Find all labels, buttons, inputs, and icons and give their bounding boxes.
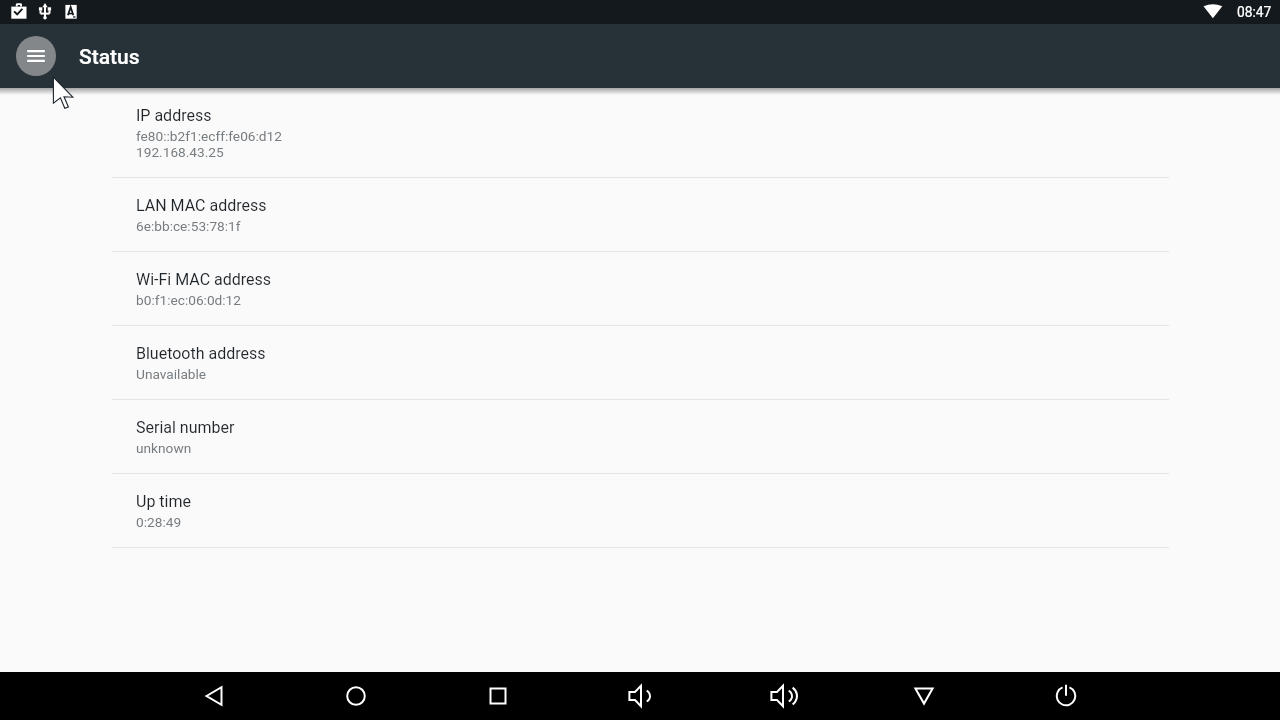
button[interactable]: Volume down: [569, 672, 711, 720]
button[interactable]: Hide keyboard: [853, 672, 995, 720]
button[interactable]: Serial number: [0, 400, 1280, 474]
button[interactable]: Power: [995, 672, 1137, 720]
button[interactable]: Home: [285, 672, 427, 720]
button[interactable]: Wi-Fi MAC address: [0, 252, 1280, 326]
staticText: Up time: [136, 492, 191, 511]
staticText: 192.168.43.25: [136, 144, 224, 160]
staticText: Unavailable: [136, 366, 207, 382]
staticText: IP address: [136, 106, 212, 125]
staticText: 08:47: [1237, 4, 1272, 20]
button[interactable]: Recents: [427, 672, 569, 720]
button[interactable]: LAN MAC address: [0, 178, 1280, 252]
staticText: Bluetooth address: [136, 344, 266, 363]
button[interactable]: Bluetooth address: [0, 326, 1280, 400]
button[interactable]: IP address: [0, 88, 1280, 178]
staticText: 6e:bb:ce:53:78:1f: [136, 218, 241, 234]
button[interactable]: Up time: [0, 474, 1280, 548]
staticText: Wi-Fi MAC address: [136, 270, 272, 289]
staticText: Serial number: [136, 418, 235, 437]
staticText: LAN MAC address: [136, 196, 267, 215]
staticText: 0:28:49: [136, 514, 182, 530]
staticText: fe80::b2f1:ecff:fe06:d12: [136, 128, 282, 144]
staticText: Status: [79, 45, 140, 70]
staticText: unknown: [136, 440, 192, 456]
button[interactable]: Volume up: [711, 672, 853, 720]
staticText: b0:f1:ec:06:0d:12: [136, 292, 242, 308]
button[interactable]: Back: [143, 672, 285, 720]
button[interactable]: Open navigation menu: [16, 36, 56, 76]
